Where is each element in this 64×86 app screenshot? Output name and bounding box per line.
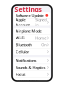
button[interactable]: Bluetooth: [14, 41, 50, 48]
staticText: Notifications: [16, 58, 37, 63]
staticText: Focus: [16, 72, 26, 77]
button[interactable]: Apple Account: [14, 19, 50, 25]
staticText: Airplane Mode: [16, 28, 42, 34]
staticText: Cellular: [16, 49, 30, 54]
staticText: Sounds & Haptics: [16, 65, 46, 70]
button[interactable]: Cellular: [14, 48, 50, 55]
staticText: Settings: [14, 5, 41, 14]
staticText: Bluetooth: [16, 42, 32, 47]
button[interactable]: Focus: [14, 71, 50, 78]
button[interactable]: Software Update: [14, 12, 50, 19]
button[interactable]: Sounds & Haptics: [14, 64, 50, 71]
staticText: On: [41, 42, 46, 47]
staticText: •••: [46, 3, 49, 6]
staticText: 9:41: [15, 3, 22, 6]
staticText: Software Update: [16, 13, 44, 18]
button[interactable]: Notifications: [14, 57, 50, 64]
staticText: Apple Account: [16, 17, 30, 27]
button[interactable]: Wi-Fi: [14, 35, 50, 41]
button[interactable]: Airplane Mode: [14, 28, 50, 34]
staticText: Screen Time: [16, 78, 38, 84]
staticText: Signed in: [35, 17, 46, 27]
button[interactable]: Screen Time: [14, 78, 50, 84]
staticText: Home: [35, 35, 46, 41]
staticText: Wi-Fi: [16, 35, 25, 41]
